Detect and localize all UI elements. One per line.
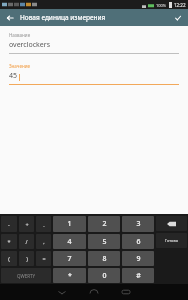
button[interactable]: 5 [88, 234, 120, 249]
button[interactable]: 4 [53, 234, 86, 249]
button[interactable]: = [36, 251, 51, 266]
staticText: ) [26, 255, 28, 262]
staticText: , [43, 238, 45, 245]
button[interactable]: Back [0, 9, 20, 26]
staticText: + [25, 221, 29, 228]
button[interactable]: - [1, 216, 17, 232]
staticText: 3 [136, 219, 141, 229]
staticText: / [25, 238, 28, 245]
staticText: Название [9, 32, 31, 38]
staticText: 100% [156, 3, 167, 8]
staticText: 6 [136, 237, 141, 247]
button[interactable]: Значение [9, 63, 179, 85]
button[interactable]: Home [78, 284, 110, 300]
button[interactable]: 0 [88, 268, 120, 283]
button[interactable]: 7 [53, 251, 86, 266]
staticText: - [8, 221, 10, 228]
button[interactable]: . [36, 216, 51, 232]
button[interactable]: , [36, 234, 51, 249]
staticText: overclockers [9, 40, 51, 50]
button[interactable]: 3 [122, 216, 154, 232]
staticText: 5 [102, 237, 107, 247]
button[interactable]: 6 [122, 234, 154, 249]
staticText: # [136, 271, 141, 281]
button[interactable]: 1 [53, 216, 86, 232]
button[interactable]: 8 [88, 251, 120, 266]
button[interactable]: ) [19, 251, 34, 266]
button[interactable]: QWERTY [1, 268, 51, 283]
staticText: Значение [9, 63, 31, 69]
staticText: 8 [102, 254, 107, 264]
button[interactable]: 2 [88, 216, 120, 232]
staticText: * [68, 271, 72, 281]
button[interactable]: / [19, 234, 34, 249]
staticText: 12:22 [174, 2, 186, 8]
staticText: Новая единица измерения [20, 13, 106, 22]
button[interactable]: Back [46, 284, 78, 300]
button[interactable]: Backspace [156, 216, 187, 231]
button[interactable]: * [1, 234, 17, 249]
staticText: 0 [102, 271, 107, 281]
button[interactable]: Save [168, 9, 188, 26]
button[interactable]: 9 [122, 251, 154, 266]
staticText: 4 [67, 237, 72, 247]
button[interactable]: # [122, 268, 154, 283]
button[interactable]: Готово [156, 233, 187, 248]
staticText: ( [8, 255, 10, 262]
staticText: 7 [67, 254, 72, 264]
button[interactable]: Название [9, 32, 179, 54]
staticText: Готово [165, 238, 179, 243]
staticText: 45 [9, 71, 18, 81]
staticText: * [7, 238, 11, 245]
staticText: QWERTY [17, 273, 36, 279]
button[interactable]: Recents [110, 284, 142, 300]
button[interactable]: ( [1, 251, 17, 266]
staticText: 1 [67, 219, 72, 229]
staticText: 2 [102, 219, 107, 229]
staticText: = [42, 255, 46, 262]
button[interactable]: + [19, 216, 34, 232]
button[interactable]: * [53, 268, 86, 283]
staticText: 9 [136, 254, 141, 264]
staticText: . [43, 221, 45, 228]
